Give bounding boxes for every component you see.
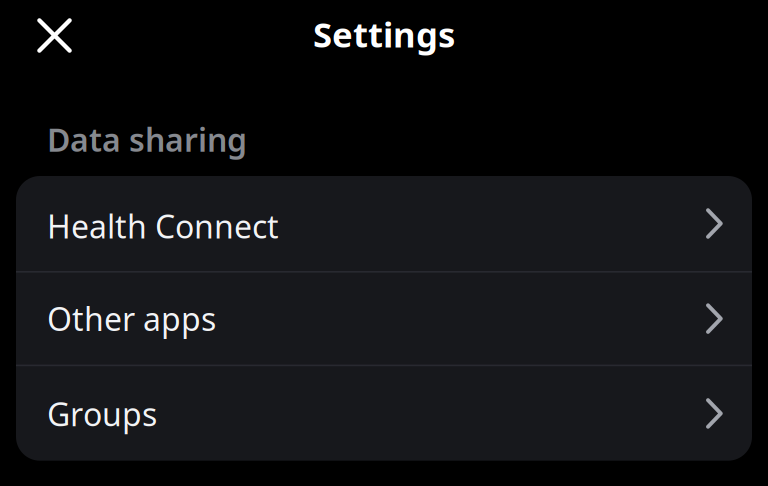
button[interactable]: Close — [27, 8, 82, 63]
staticText: Health Connect — [47, 205, 279, 247]
staticText: Groups — [47, 393, 157, 435]
button[interactable]: Health Connect — [16, 176, 752, 271]
button[interactable]: Groups — [16, 366, 752, 461]
staticText: Settings — [313, 11, 455, 57]
staticText: Other apps — [47, 297, 216, 340]
button[interactable]: Other apps — [16, 273, 752, 365]
staticText: Data sharing — [47, 118, 247, 160]
